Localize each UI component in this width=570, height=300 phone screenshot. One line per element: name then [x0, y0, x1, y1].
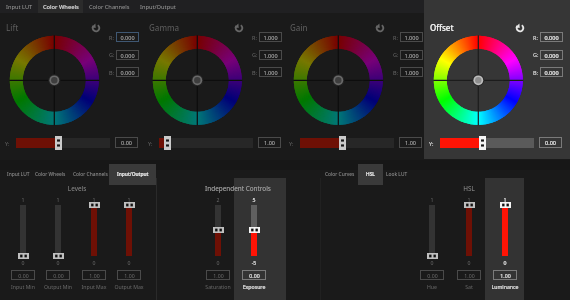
- button[interactable]: 0.00: [115, 137, 138, 148]
- staticText: 1.00: [124, 272, 135, 279]
- button[interactable]: [55, 205, 61, 256]
- staticText: 1: [480, 196, 530, 203]
- button[interactable]: Color Channels: [72, 164, 108, 185]
- button[interactable]: [215, 205, 221, 256]
- button[interactable]: [466, 205, 472, 256]
- button[interactable]: [159, 138, 253, 148]
- button[interactable]: 1.000: [259, 67, 282, 77]
- staticText: 0: [480, 259, 530, 266]
- button[interactable]: 0.00: [11, 270, 35, 280]
- button[interactable]: [213, 227, 224, 233]
- staticText: Hue: [407, 283, 457, 290]
- button[interactable]: [339, 136, 346, 150]
- staticText: 1: [0, 196, 48, 203]
- button[interactable]: 1.000: [400, 67, 423, 77]
- button[interactable]: 1.00: [258, 137, 281, 148]
- button[interactable]: Color Channels: [86, 0, 132, 13]
- button[interactable]: Input LUT: [4, 164, 32, 185]
- button[interactable]: [124, 202, 135, 208]
- button[interactable]: [249, 227, 260, 233]
- button[interactable]: 1.00: [206, 270, 230, 280]
- button[interactable]: 1.00: [117, 270, 141, 280]
- staticText: 1.000: [404, 69, 419, 76]
- staticText: Input LUT: [7, 171, 30, 178]
- button[interactable]: [500, 202, 511, 208]
- button[interactable]: 1.00: [457, 270, 481, 280]
- staticText: 1: [69, 196, 119, 203]
- staticText: R:: [109, 34, 114, 41]
- button[interactable]: 1.000: [400, 32, 423, 42]
- staticText: 0.00: [427, 272, 438, 279]
- staticText: HSL: [366, 171, 375, 178]
- button[interactable]: 0.000: [116, 32, 139, 42]
- staticText: B:: [533, 69, 539, 76]
- button[interactable]: 1.000: [259, 50, 282, 60]
- staticText: G:: [393, 51, 399, 58]
- button[interactable]: [479, 136, 486, 150]
- button[interactable]: Input/Output: [138, 0, 178, 13]
- button[interactable]: Color Wheels: [33, 164, 67, 185]
- button[interactable]: 0.00: [420, 270, 444, 280]
- staticText: Exposure: [229, 283, 279, 290]
- button[interactable]: Input/Output: [109, 164, 156, 185]
- button[interactable]: 0.00: [539, 137, 562, 148]
- staticText: 0: [407, 259, 457, 266]
- button[interactable]: [55, 136, 62, 150]
- button[interactable]: [53, 253, 64, 259]
- button[interactable]: [91, 205, 97, 256]
- staticText: R:: [252, 34, 257, 41]
- staticText: 0.00: [545, 139, 556, 146]
- button[interactable]: Input LUT: [5, 0, 33, 13]
- button[interactable]: [18, 253, 29, 259]
- staticText: Output Min: [33, 283, 83, 290]
- staticText: 1.000: [263, 34, 278, 41]
- staticText: B:: [109, 69, 115, 76]
- staticText: Color Channels: [73, 171, 108, 178]
- button[interactable]: HSL: [358, 164, 383, 185]
- button[interactable]: Reset: [90, 22, 102, 34]
- button[interactable]: [300, 138, 394, 148]
- button[interactable]: [429, 205, 435, 256]
- button[interactable]: 1.00: [399, 137, 422, 148]
- button[interactable]: [427, 253, 438, 259]
- button[interactable]: 1.00: [493, 270, 517, 280]
- button[interactable]: [464, 202, 475, 208]
- button[interactable]: [251, 205, 257, 256]
- button[interactable]: [126, 205, 132, 256]
- staticText: 1: [444, 196, 494, 203]
- button[interactable]: 0.00: [46, 270, 70, 280]
- button[interactable]: 1.000: [259, 32, 282, 42]
- button[interactable]: [20, 205, 26, 256]
- button[interactable]: [502, 205, 508, 256]
- button[interactable]: Look LUT: [383, 164, 411, 185]
- staticText: Color Wheels: [35, 171, 66, 178]
- button[interactable]: 0.000: [540, 67, 563, 77]
- button[interactable]: Color Curves: [324, 164, 356, 185]
- button[interactable]: Reset: [514, 22, 526, 34]
- button[interactable]: [16, 138, 110, 148]
- button[interactable]: [440, 138, 534, 148]
- staticText: 1.000: [263, 69, 278, 76]
- staticText: 0.00: [121, 139, 132, 146]
- button[interactable]: Reset: [374, 22, 386, 34]
- button[interactable]: 0.000: [116, 50, 139, 60]
- staticText: Color Curves: [325, 171, 355, 178]
- button[interactable]: 1.000: [400, 50, 423, 60]
- button[interactable]: 0.000: [540, 32, 563, 42]
- staticText: 1.000: [404, 52, 419, 59]
- staticText: 1.00: [464, 272, 475, 279]
- button[interactable]: [89, 202, 100, 208]
- staticText: 5: [229, 196, 279, 203]
- staticText: Input/Output: [117, 171, 149, 178]
- button[interactable]: 0.00: [242, 270, 266, 280]
- staticText: 1.00: [264, 139, 275, 146]
- button[interactable]: 0.000: [116, 67, 139, 77]
- staticText: G:: [109, 51, 115, 58]
- button[interactable]: 1.00: [82, 270, 106, 280]
- button[interactable]: 0.000: [540, 50, 563, 60]
- staticText: Color Channels: [89, 3, 130, 11]
- button[interactable]: [164, 136, 171, 150]
- button[interactable]: Color Wheels: [38, 0, 83, 13]
- staticText: Lift: [6, 22, 19, 33]
- button[interactable]: Reset: [233, 22, 245, 34]
